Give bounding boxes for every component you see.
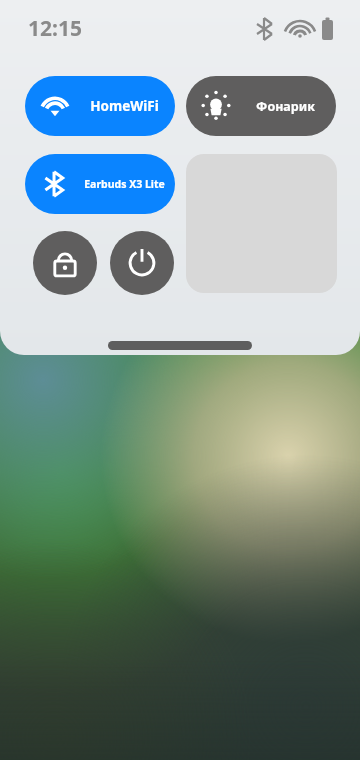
button[interactable]: Lock — [33, 231, 97, 295]
button[interactable]: Wi-Fi HomeWiFi — [25, 76, 175, 136]
staticText: 12:15 — [28, 14, 82, 43]
button[interactable]: Collapse panel — [108, 341, 252, 350]
button[interactable]: Power — [110, 231, 174, 295]
staticText: Earbuds X3 Lite — [84, 177, 165, 191]
staticText: Фонарик — [256, 98, 315, 115]
staticText: HomeWiFi — [90, 97, 159, 115]
button[interactable]: Фонарик — [186, 76, 336, 136]
button[interactable]: Bluetooth Earbuds X3 Lite — [25, 154, 175, 214]
